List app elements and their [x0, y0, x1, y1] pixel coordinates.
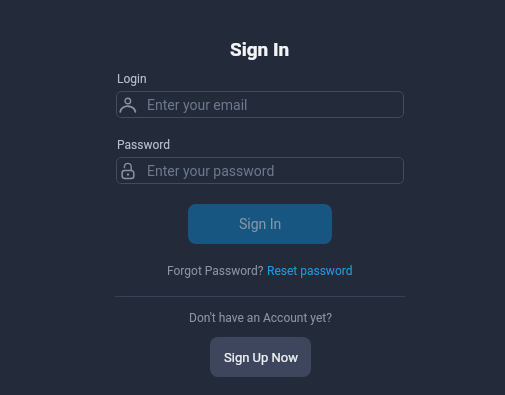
staticText: Reset password — [267, 264, 353, 278]
button[interactable]: Reset password — [267, 264, 353, 278]
staticText: Don't have an Account yet? — [189, 311, 332, 325]
button[interactable]: Sign In — [188, 204, 332, 244]
staticText: Sign Up Now — [224, 350, 298, 365]
staticText: Sign In — [230, 38, 290, 60]
staticText: Forgot Password? — [167, 264, 267, 278]
staticText: Sign In — [239, 216, 282, 232]
staticText: Enter your email — [147, 97, 248, 113]
button[interactable]: Sign Up Now — [210, 337, 311, 377]
staticText: Password — [117, 138, 171, 152]
button[interactable]: Enter your email — [116, 91, 404, 118]
staticText: Enter your password — [147, 163, 275, 179]
staticText: Login — [117, 72, 147, 86]
button[interactable]: Enter your password — [116, 157, 404, 184]
